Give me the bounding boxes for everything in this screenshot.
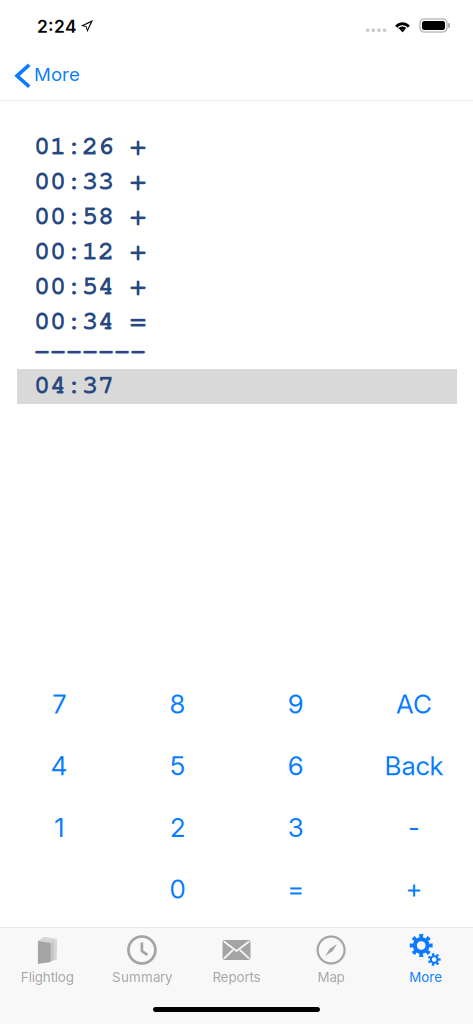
staticText: Flightlog — [21, 969, 74, 985]
button[interactable]: Summary — [95, 927, 189, 982]
button[interactable]: More — [378, 927, 473, 982]
staticText: 04:37 — [34, 365, 114, 401]
staticText: 7 — [52, 688, 66, 720]
button[interactable]: + — [355, 858, 473, 920]
button[interactable]: 2 — [118, 797, 236, 858]
staticText: 3 — [288, 812, 304, 843]
button[interactable]: = — [236, 858, 355, 920]
button[interactable]: Reports — [189, 927, 284, 982]
staticText: - — [408, 812, 420, 843]
staticText: 01:26 + — [34, 126, 146, 162]
staticText: = — [287, 873, 304, 905]
button[interactable]: 0 — [118, 858, 236, 920]
button[interactable]: 9 — [236, 673, 355, 735]
staticText: 00:34 = — [34, 301, 146, 337]
staticText: More — [34, 63, 80, 86]
staticText: Reports — [212, 969, 260, 985]
button[interactable]: 7 — [0, 673, 118, 735]
staticText: 00:12 + — [34, 231, 146, 267]
staticText: 00:54 + — [34, 266, 146, 302]
button[interactable]: 8 — [118, 673, 236, 735]
staticText: 1 — [54, 812, 64, 843]
button[interactable]: More — [0, 54, 90, 98]
staticText: 9 — [288, 688, 304, 720]
button[interactable]: Map — [284, 927, 378, 982]
button[interactable]: AC — [355, 673, 473, 735]
staticText: 2:24 — [37, 16, 77, 37]
staticText: 00:58 + — [34, 196, 146, 232]
staticText: ------- — [34, 331, 146, 367]
staticText: + — [405, 873, 422, 905]
staticText: 6 — [288, 750, 304, 781]
staticText: Map — [318, 969, 345, 985]
staticText: 8 — [169, 688, 185, 720]
button[interactable]: 1 — [0, 797, 118, 858]
button[interactable]: 6 — [236, 735, 355, 797]
button[interactable]: - — [355, 797, 473, 858]
button[interactable]: 3 — [236, 797, 355, 858]
staticText: Summary — [112, 969, 172, 985]
staticText: 5 — [170, 750, 185, 781]
button[interactable]: 4 — [0, 735, 118, 797]
button[interactable]: 5 — [118, 735, 236, 797]
staticText: AC — [396, 688, 432, 720]
staticText: 2 — [170, 812, 185, 843]
button[interactable]: Back — [355, 735, 473, 797]
staticText: 0 — [169, 873, 185, 905]
staticText: Back — [384, 750, 443, 781]
staticText: More — [409, 969, 442, 985]
button[interactable]: Flightlog — [0, 927, 95, 982]
staticText: 4 — [51, 750, 68, 781]
staticText: 00:33 + — [34, 161, 146, 197]
